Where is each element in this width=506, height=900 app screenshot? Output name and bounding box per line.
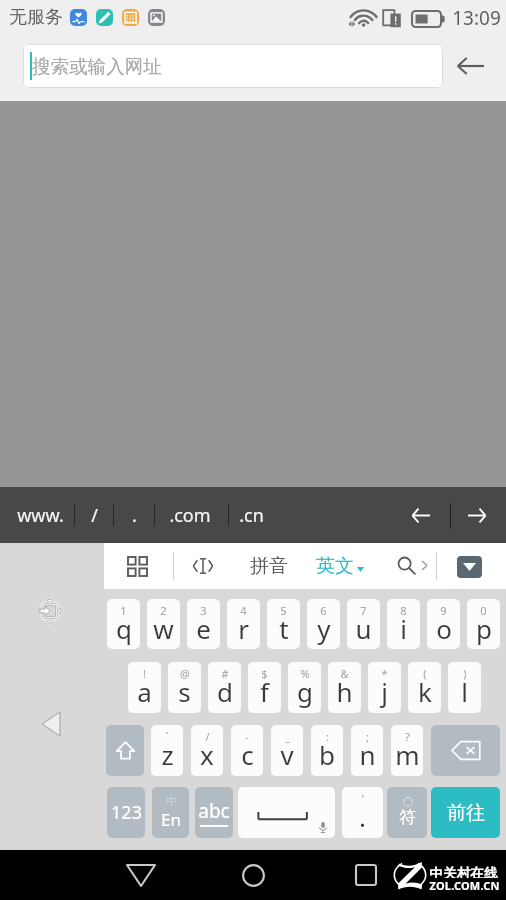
button[interactable]: $ <box>248 662 281 713</box>
staticText: ( <box>423 666 427 681</box>
staticText: 123 <box>111 800 142 825</box>
button[interactable]: ; <box>351 725 383 776</box>
staticText: u <box>355 611 372 646</box>
staticText: _ <box>285 729 290 744</box>
button[interactable]: 6 <box>307 599 340 649</box>
button[interactable]: ( <box>408 662 441 713</box>
staticText: ? <box>405 729 410 744</box>
button[interactable]: 0 <box>467 599 500 649</box>
staticText: x <box>200 737 214 772</box>
button[interactable]: Backspace <box>431 725 500 776</box>
button[interactable]: . <box>120 487 148 543</box>
staticText: % <box>300 666 310 681</box>
staticText: @ <box>180 666 190 681</box>
button[interactable]: Back <box>452 47 489 84</box>
button[interactable]: Symbols <box>387 787 427 838</box>
button[interactable]: Search <box>388 547 424 583</box>
staticText: 2 <box>160 603 167 618</box>
button[interactable]: 9 <box>427 599 460 649</box>
staticText: : <box>326 729 329 744</box>
button[interactable]: _ <box>271 725 303 776</box>
staticText: .com <box>169 503 211 528</box>
button[interactable]: : <box>311 725 343 776</box>
staticText: / <box>205 729 210 744</box>
button[interactable]: Shift <box>106 725 144 776</box>
button[interactable]: 3 <box>187 599 220 649</box>
button[interactable]: 搜索或输入网址 <box>23 44 443 88</box>
staticText: b <box>319 737 335 772</box>
button[interactable]: - <box>231 725 263 776</box>
staticText: * <box>381 666 388 681</box>
button[interactable]: Previous page <box>403 497 439 533</box>
button[interactable]: Switch language <box>152 787 189 838</box>
staticText: a <box>137 674 152 709</box>
staticText: 5 <box>280 603 287 618</box>
button[interactable]: www. <box>10 487 70 543</box>
staticText: 13:09 <box>452 5 501 31</box>
staticText: 符 <box>399 807 416 828</box>
button[interactable]: ) <box>448 662 481 713</box>
staticText: s <box>178 674 191 709</box>
staticText: . <box>132 503 137 528</box>
staticText: q <box>116 611 132 646</box>
staticText: ’ <box>362 791 364 806</box>
button[interactable]: Collapse <box>42 712 60 736</box>
staticText: - <box>245 729 249 744</box>
button[interactable]: Move cursor <box>183 546 223 586</box>
staticText: & <box>340 666 349 681</box>
button[interactable]: Space <box>238 787 335 838</box>
button[interactable]: 1 <box>107 599 140 649</box>
button[interactable]: 2 <box>147 599 180 649</box>
button[interactable]: Home <box>237 860 269 890</box>
button[interactable]: 4 <box>227 599 260 649</box>
staticText: t <box>279 611 289 646</box>
button[interactable]: .com <box>161 487 219 543</box>
button[interactable]: 5 <box>267 599 300 649</box>
staticText: 7 <box>360 603 367 618</box>
button[interactable]: Back <box>125 860 157 890</box>
staticText: ; <box>366 729 369 744</box>
staticText: # <box>221 666 229 681</box>
staticText: e <box>196 611 211 646</box>
staticText: n <box>359 737 376 772</box>
staticText: ) <box>463 666 467 681</box>
staticText: 1 <box>120 603 127 618</box>
button[interactable]: ! <box>128 662 161 713</box>
button[interactable]: Next page <box>459 497 495 533</box>
button[interactable]: .cn <box>229 487 273 543</box>
button[interactable]: & <box>328 662 361 713</box>
button[interactable]: 前往 <box>431 787 500 838</box>
staticText: c <box>241 737 254 772</box>
button[interactable]: @ <box>168 662 201 713</box>
button[interactable]: ? <box>391 725 423 776</box>
button[interactable]: Number keyboard <box>107 787 145 838</box>
staticText: h <box>336 674 353 709</box>
button[interactable]: Recent apps <box>350 860 382 890</box>
staticText: m <box>395 737 420 772</box>
staticText: 9 <box>440 603 447 618</box>
staticText: / <box>91 503 98 528</box>
staticText: 搜索或输入网址 <box>32 55 162 78</box>
staticText: z <box>161 737 174 772</box>
staticText: o <box>436 611 452 646</box>
button[interactable]: % <box>288 662 321 713</box>
button[interactable]: 英文 <box>304 546 376 586</box>
button[interactable]: / <box>191 725 223 776</box>
staticText: . <box>359 799 366 834</box>
button[interactable]: 拼音 <box>237 546 301 586</box>
button[interactable]: Hide keyboard <box>457 556 482 578</box>
staticText: 0 <box>480 603 487 618</box>
button[interactable]: / <box>80 487 108 543</box>
staticText: f <box>260 674 269 709</box>
staticText: g <box>297 674 313 709</box>
button[interactable]: 8 <box>387 599 420 649</box>
button[interactable]: abc <box>195 787 233 838</box>
button[interactable]: Move keyboard <box>36 597 64 625</box>
button[interactable]: Keyboard layouts <box>117 546 157 586</box>
staticText: .cn <box>239 503 264 528</box>
button[interactable]: ´ <box>151 725 183 776</box>
button[interactable]: # <box>208 662 241 713</box>
button[interactable]: ’ <box>342 787 383 838</box>
button[interactable]: 7 <box>347 599 380 649</box>
button[interactable]: * <box>368 662 401 713</box>
